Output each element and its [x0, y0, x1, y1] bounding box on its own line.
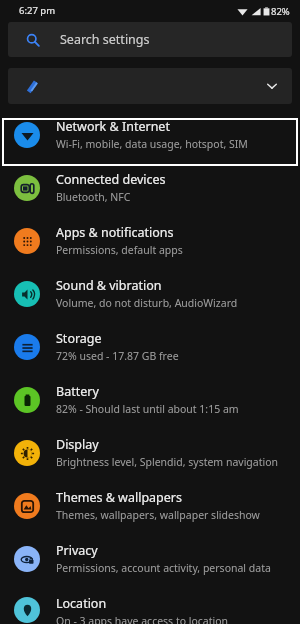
staticText: Permissions, default apps	[56, 243, 183, 257]
staticText: Bluetooth, NFC	[56, 190, 131, 204]
button[interactable]: Sound & vibration	[0, 277, 300, 330]
staticText: On - 3 apps have access to location	[56, 614, 229, 624]
button[interactable]: Themes & wallpapers	[0, 489, 300, 542]
staticText: Wi-Fi, mobile, data usage, hotspot, SIM	[56, 137, 248, 151]
button[interactable]: Expand suggestions	[8, 68, 292, 104]
staticText: Network & Internet	[56, 118, 170, 135]
staticText: Battery	[56, 383, 99, 400]
button[interactable]: Apps & notifications	[0, 224, 300, 277]
staticText: Search settings	[60, 31, 150, 48]
staticText: Privacy	[56, 542, 98, 559]
staticText: Connected devices	[56, 171, 166, 188]
staticText: Display	[56, 436, 99, 453]
staticText: Sound & vibration	[56, 277, 162, 294]
staticText: 6:27 pm	[19, 4, 56, 17]
button[interactable]: Location	[0, 595, 300, 624]
button[interactable]: Search settings	[8, 22, 292, 57]
button[interactable]: Storage	[0, 330, 300, 383]
button[interactable]: Network & Internet	[2, 118, 298, 166]
staticText: Apps & notifications	[56, 224, 174, 241]
staticText: Location	[56, 595, 107, 612]
staticText: Storage	[56, 330, 102, 347]
staticText: Themes & wallpapers	[56, 489, 182, 506]
staticText: 72% used - 17.87 GB free	[56, 349, 179, 363]
button[interactable]: Battery	[0, 383, 300, 436]
staticText: 82% - Should last until about 1:15 am	[56, 402, 239, 416]
button[interactable]: Privacy	[0, 542, 300, 595]
button[interactable]: Display	[0, 436, 300, 489]
button[interactable]: Connected devices	[0, 171, 300, 224]
staticText: Permissions, account activity, personal …	[56, 561, 271, 575]
staticText: Volume, do not disturb, AudioWizard	[56, 296, 238, 310]
staticText: 82%	[271, 5, 290, 18]
staticText: Themes, wallpapers, wallpaper slideshow	[56, 508, 260, 522]
staticText: Brightness level, Splendid, system navig…	[56, 455, 279, 469]
